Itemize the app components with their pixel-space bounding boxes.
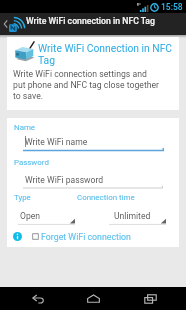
button[interactable]: Forget WiFi connection	[11, 230, 145, 244]
button[interactable]: Recent apps	[130, 287, 170, 310]
staticText: Type	[14, 193, 31, 202]
staticText: Name	[14, 123, 36, 132]
staticText: Forget WiFi connection	[41, 232, 131, 242]
staticText: Connection time	[77, 193, 135, 202]
button[interactable]: Back	[17, 287, 57, 310]
staticText: Unlimited	[114, 211, 151, 221]
staticText: Write WiFi name	[25, 137, 88, 147]
staticText: Write WiFi Connection in NFC Tag	[38, 42, 175, 66]
staticText: Password	[14, 158, 49, 167]
button[interactable]: Open	[18, 211, 75, 225]
button[interactable]: Back	[0, 13, 186, 35]
button[interactable]: Write WiFi password	[23, 170, 163, 189]
staticText: Write WiFi connection in NFC Tag	[26, 16, 155, 26]
staticText: Open	[20, 211, 41, 221]
staticText: Write WiFi connection settings and put p…	[13, 69, 181, 101]
staticText: 15:58	[161, 2, 183, 12]
button[interactable]: Unlimited	[109, 211, 166, 225]
button[interactable]: Write WiFi name	[23, 133, 164, 152]
other: Back	[3, 19, 8, 29]
staticText: Write WiFi password	[25, 175, 104, 185]
button[interactable]: Home	[73, 287, 113, 310]
